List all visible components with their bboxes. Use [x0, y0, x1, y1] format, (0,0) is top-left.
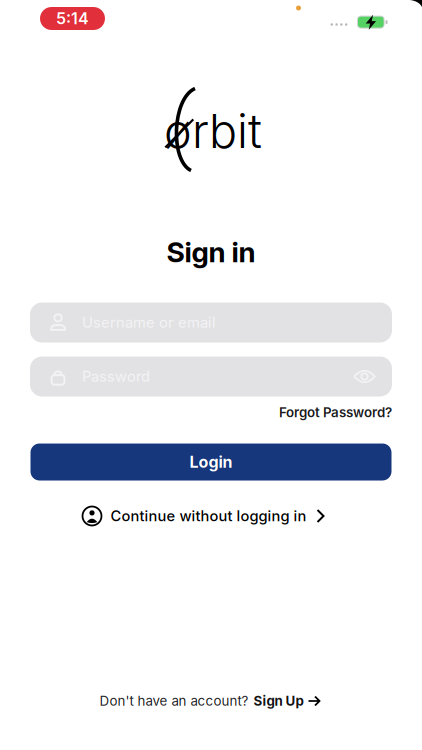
button[interactable]: Username or email — [30, 302, 392, 342]
button[interactable]: Continue without logging in — [81, 505, 325, 526]
staticText: Don't have an account? — [99, 693, 248, 709]
staticText: Login — [189, 453, 232, 471]
button[interactable]: Login — [30, 443, 391, 480]
button[interactable]: Password — [30, 356, 392, 396]
button[interactable]: Forgot Password? — [279, 405, 392, 420]
button[interactable]: Return to call — [40, 7, 105, 30]
staticText: Forgot Password? — [279, 405, 392, 420]
staticText: 5:14 — [56, 9, 89, 28]
staticText: Continue without logging in — [110, 507, 306, 525]
staticText: Password — [82, 368, 150, 385]
button[interactable]: Show password — [353, 368, 376, 384]
staticText: Sign in — [166, 235, 255, 268]
staticText: ørbit — [164, 103, 262, 159]
staticText: Username or email — [82, 314, 216, 331]
staticText: Sign Up — [253, 693, 303, 709]
button[interactable]: Don't have an account? — [99, 693, 320, 709]
